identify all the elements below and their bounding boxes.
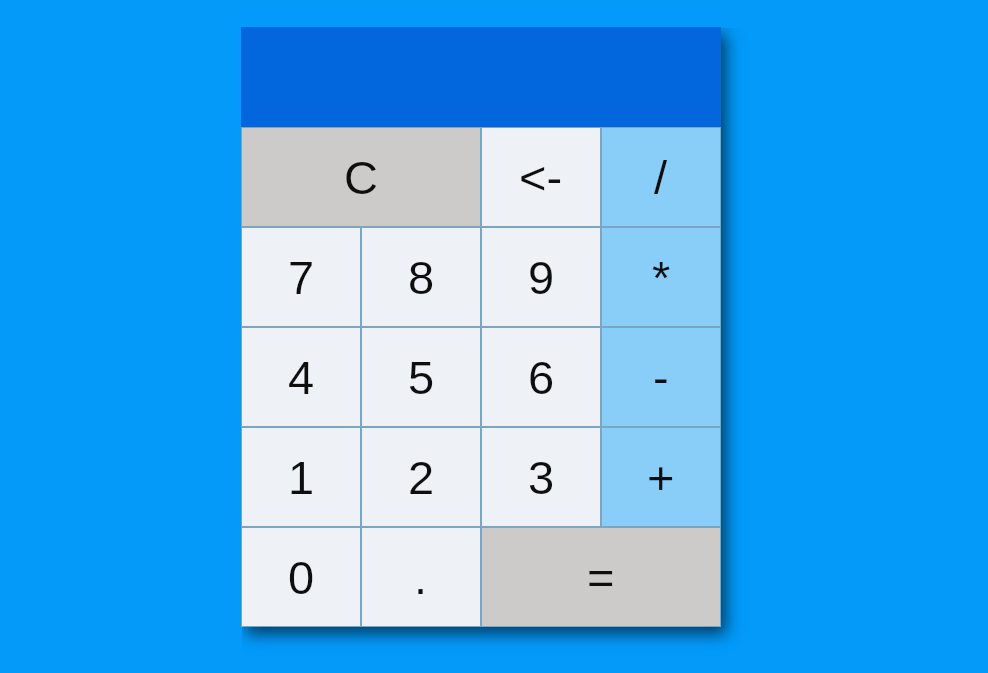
button[interactable]: 0 xyxy=(241,527,361,627)
staticText: 1 xyxy=(288,451,315,504)
staticText: . xyxy=(414,551,428,604)
staticText: 8 xyxy=(408,251,435,304)
button[interactable]: . xyxy=(361,527,481,627)
button[interactable]: - xyxy=(601,327,721,427)
button[interactable]: C xyxy=(241,127,481,227)
staticText: <- xyxy=(519,151,563,204)
staticText: - xyxy=(653,351,669,404)
button[interactable]: 6 xyxy=(481,327,601,427)
staticText: 4 xyxy=(288,351,315,404)
button[interactable]: 7 xyxy=(241,227,361,327)
button[interactable]: 2 xyxy=(361,427,481,527)
staticText: 9 xyxy=(528,251,555,304)
staticText: 3 xyxy=(528,451,555,504)
button[interactable]: 4 xyxy=(241,327,361,427)
button[interactable]: <- xyxy=(481,127,601,227)
button[interactable]: 9 xyxy=(481,227,601,327)
button[interactable]: / xyxy=(601,127,721,227)
staticText: 2 xyxy=(408,451,435,504)
button[interactable]: + xyxy=(601,427,721,527)
staticText: 0 xyxy=(288,551,315,604)
button[interactable]: * xyxy=(601,227,721,327)
staticText: 7 xyxy=(288,251,315,304)
staticText: C xyxy=(344,151,378,204)
button[interactable]: 5 xyxy=(361,327,481,427)
staticText: * xyxy=(652,251,671,304)
button[interactable]: = xyxy=(481,527,721,627)
staticText: = xyxy=(587,551,615,604)
button[interactable]: 1 xyxy=(241,427,361,527)
staticText: / xyxy=(654,151,668,204)
button[interactable]: 3 xyxy=(481,427,601,527)
staticText: 5 xyxy=(408,351,435,404)
staticText: + xyxy=(647,451,675,504)
button[interactable]: 8 xyxy=(361,227,481,327)
staticText: 6 xyxy=(528,351,555,404)
